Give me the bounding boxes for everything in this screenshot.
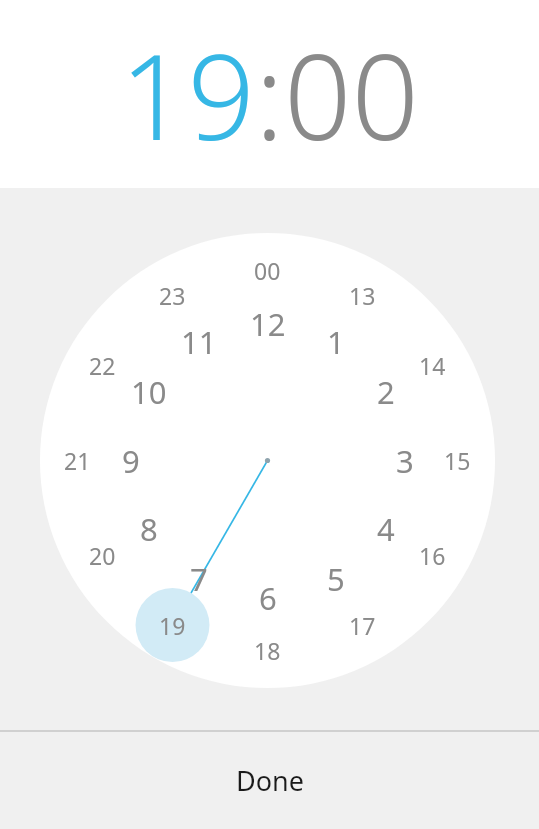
button[interactable]: 12 [250,303,286,345]
button[interactable]: 9 [122,440,140,482]
button[interactable]: 11 [181,321,217,363]
staticText: 18 [254,635,281,666]
staticText: 14 [419,350,446,381]
staticText: 4 [377,508,395,550]
button[interactable]: 3 [396,440,414,482]
button[interactable]: 22 [89,350,116,381]
staticText: 00 [254,255,281,286]
button[interactable]: 19 [120,14,255,175]
button[interactable]: 14 [419,350,446,381]
staticText: 1 [327,321,345,363]
button[interactable]: 20 [89,540,116,571]
staticText: 10 [131,371,167,413]
button[interactable]: 6 [259,577,277,619]
button[interactable]: 13 [349,280,376,311]
staticText: 13 [349,280,376,311]
button[interactable]: 4 [377,508,395,550]
button[interactable]: 7 [190,558,208,600]
staticText: 12 [250,303,286,345]
button[interactable]: 10 [131,371,167,413]
button[interactable]: 21 [64,445,91,476]
staticText: 2 [377,371,395,413]
staticText: 7 [190,558,208,600]
button[interactable]: 1 [327,321,345,363]
staticText: 15 [444,445,471,476]
staticText: 9 [122,440,140,482]
staticText: 6 [259,577,277,619]
staticText: 20 [89,540,116,571]
button[interactable]: 16 [419,540,446,571]
staticText: 5 [327,558,345,600]
button[interactable]: 17 [349,610,376,641]
button[interactable]: 8 [140,508,158,550]
staticText: 22 [89,350,116,381]
staticText: 16 [419,540,446,571]
staticText: 00 [284,14,419,175]
button[interactable]: 19 [159,610,186,641]
button[interactable]: 15 [444,445,471,476]
staticText: 19 [120,14,255,175]
staticText: 19 [159,610,186,641]
button[interactable]: Done [0,732,539,829]
staticText: Done [236,762,304,799]
staticText: 11 [181,321,217,363]
staticText: 23 [159,280,186,311]
button[interactable]: 5 [327,558,345,600]
staticText: : [255,14,284,175]
button[interactable]: 23 [159,280,186,311]
button[interactable]: 2 [377,371,395,413]
button[interactable]: 00 [284,14,419,175]
staticText: 8 [140,508,158,550]
staticText: 21 [64,445,91,476]
button[interactable]: 18 [254,635,281,666]
staticText: 3 [396,440,414,482]
staticText: 17 [349,610,376,641]
button[interactable]: 00 [254,255,281,286]
